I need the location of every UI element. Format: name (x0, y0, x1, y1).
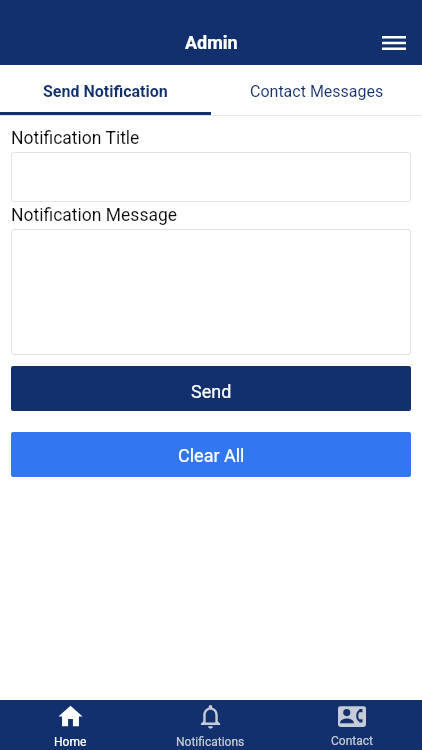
staticText: Contact Messages (250, 82, 384, 101)
staticText: Home (54, 735, 87, 749)
staticText: Send (191, 381, 232, 402)
button[interactable]: Contact (281, 700, 422, 750)
staticText: Admin (185, 32, 238, 53)
button[interactable]: Send (11, 366, 411, 411)
button[interactable]: Home (0, 700, 140, 750)
staticText: Notification Message (11, 205, 178, 226)
button[interactable]: Notifications (140, 700, 281, 750)
staticText: Clear All (178, 445, 245, 466)
staticText: Notification Title (11, 128, 140, 149)
button[interactable]: Send Notification (0, 65, 211, 115)
button[interactable] (11, 229, 411, 355)
staticText: Notifications (176, 735, 245, 749)
button[interactable]: Contact Messages (211, 65, 422, 115)
button[interactable]: Clear All (11, 432, 411, 477)
button[interactable]: Menu (373, 22, 415, 64)
staticText: Send Notification (43, 82, 168, 101)
staticText: Contact (331, 734, 373, 748)
button[interactable] (11, 152, 411, 202)
